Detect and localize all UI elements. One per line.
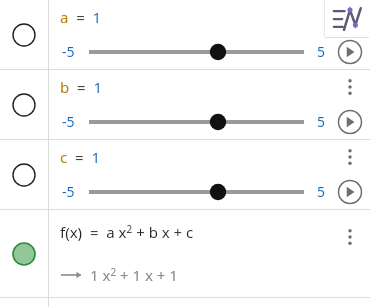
staticText: -5 bbox=[62, 112, 75, 131]
button[interactable]: Show object bbox=[0, 140, 48, 209]
staticText: b = 1 bbox=[60, 77, 102, 97]
button[interactable]: Algebra and graphics view bbox=[327, 0, 367, 37]
button[interactable]: Show object bbox=[0, 0, 48, 69]
button[interactable]: Slider value bbox=[89, 41, 304, 63]
button[interactable]: 1 x2 + 1 x + 1 bbox=[49, 253, 337, 297]
button[interactable]: Play animation bbox=[337, 109, 363, 135]
staticText: 5 bbox=[317, 182, 326, 201]
staticText: -5 bbox=[62, 182, 75, 201]
button[interactable]: Slider value bbox=[89, 181, 304, 203]
staticText: 5 bbox=[317, 112, 326, 131]
button[interactable]: More options bbox=[337, 74, 363, 100]
staticText: a = 1 bbox=[60, 7, 102, 27]
staticText: 5 bbox=[317, 42, 326, 61]
button[interactable]: More options bbox=[337, 144, 363, 170]
staticText: -5 bbox=[62, 42, 75, 61]
button[interactable]: More options bbox=[337, 224, 363, 250]
button[interactable]: Play animation bbox=[337, 39, 363, 65]
staticText: c = 1 bbox=[60, 147, 100, 167]
staticText: f(x) = a x2 + b x + c bbox=[60, 222, 194, 242]
button[interactable]: Slider value bbox=[89, 111, 304, 133]
staticText: 1 x2 + 1 x + 1 bbox=[90, 265, 178, 285]
button[interactable]: f(x) = a x2 + b x + c bbox=[49, 210, 337, 253]
button[interactable]: Play animation bbox=[337, 179, 363, 205]
button[interactable]: Show object bbox=[0, 70, 48, 139]
button[interactable]: Hide object bbox=[0, 210, 48, 297]
